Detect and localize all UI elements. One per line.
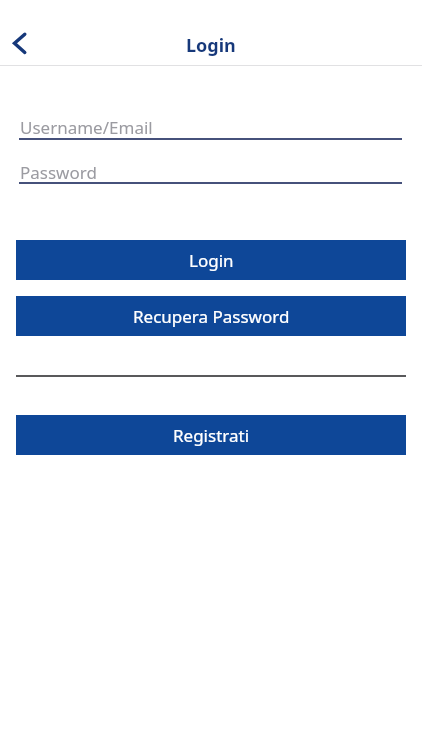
staticText: Username/Email: [20, 116, 153, 139]
button[interactable]: [4, 28, 36, 60]
staticText: Registrati: [173, 424, 250, 447]
staticText: Recupera Password: [133, 305, 290, 328]
button[interactable]: Recupera Password: [16, 296, 406, 336]
button[interactable]: Password: [19, 161, 402, 185]
button[interactable]: Username/Email: [19, 116, 402, 140]
staticText: Login: [189, 249, 234, 272]
button[interactable]: Registrati: [16, 415, 406, 455]
staticText: Login: [186, 33, 236, 58]
staticText: Password: [20, 161, 97, 184]
button[interactable]: Login: [16, 240, 406, 280]
